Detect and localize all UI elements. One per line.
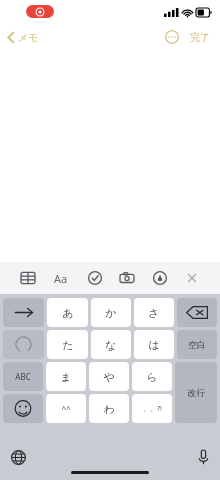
button[interactable]: Checklist — [85, 268, 105, 288]
staticText: ま — [60, 370, 72, 384]
button[interactable]: は — [134, 330, 174, 359]
staticText: な — [105, 338, 117, 352]
button[interactable]: Markup — [150, 268, 170, 288]
staticText: 、。?! — [143, 404, 162, 414]
staticText: Aa — [54, 271, 68, 286]
button[interactable]: Backspace — [177, 298, 217, 327]
staticText: ^^ — [61, 403, 71, 414]
button[interactable]: ま — [46, 362, 86, 391]
staticText: メモ — [18, 31, 39, 44]
button[interactable]: さ — [134, 298, 174, 327]
button[interactable]: Next candidate — [3, 298, 44, 327]
button[interactable]: Dictation — [198, 450, 209, 465]
button[interactable]: た — [47, 330, 88, 359]
staticText: や — [103, 370, 115, 384]
staticText: さ — [148, 306, 160, 320]
staticText: ABC — [15, 371, 31, 382]
button[interactable]: な — [91, 330, 131, 359]
staticText: は — [148, 338, 160, 352]
button[interactable]: Emoji — [3, 394, 43, 423]
other: Recording — [26, 5, 54, 18]
button[interactable]: や — [89, 362, 129, 391]
button[interactable]: あ — [47, 298, 88, 327]
button[interactable]: わ — [89, 394, 129, 423]
button[interactable]: メモ — [0, 28, 47, 47]
staticText: 完了 — [190, 31, 210, 44]
staticText: わ — [103, 402, 115, 416]
staticText: あ — [62, 306, 74, 320]
button[interactable]: Aa — [50, 267, 72, 290]
staticText: 改行 — [187, 387, 205, 398]
staticText: ら — [146, 370, 158, 384]
staticText: か — [105, 306, 117, 320]
button[interactable]: Close keyboard — [182, 268, 202, 288]
button[interactable]: 空白 — [177, 330, 217, 359]
button[interactable]: ABC — [3, 362, 43, 391]
button[interactable]: More options — [163, 28, 181, 46]
button[interactable]: 、。?! — [132, 394, 172, 423]
button[interactable]: Undo — [3, 330, 44, 359]
button[interactable]: か — [91, 298, 131, 327]
button[interactable]: ^^ — [46, 394, 86, 423]
button[interactable]: 完了 — [188, 29, 212, 46]
button[interactable]: Camera — [117, 268, 137, 288]
button[interactable]: Table — [18, 268, 38, 288]
button[interactable]: ら — [132, 362, 172, 391]
staticText: 空白 — [188, 339, 206, 350]
button[interactable]: 改行 — [175, 362, 217, 423]
staticText: た — [62, 338, 74, 352]
button[interactable]: Change keyboard — [11, 450, 26, 465]
